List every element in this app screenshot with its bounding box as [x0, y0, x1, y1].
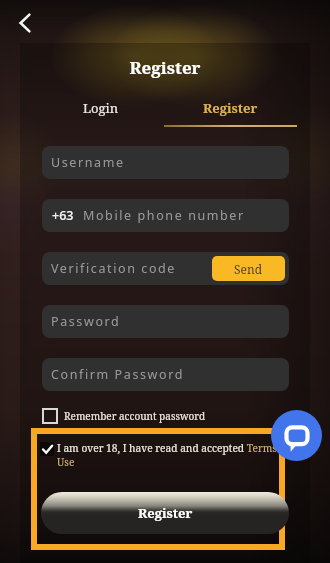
staticText: +63 [52, 207, 74, 224]
staticText: Login [83, 99, 119, 117]
button[interactable]: Username [42, 146, 289, 179]
button[interactable]: Send [212, 256, 285, 281]
button[interactable]: Login [56, 99, 146, 123]
staticText: Mobile phone number [83, 207, 245, 224]
staticText: I am over 18, I have read and accepted T… [57, 441, 277, 455]
staticText: Verification code [51, 260, 177, 277]
button[interactable]: Confirm Password [42, 358, 289, 391]
staticText: Confirm Password [51, 366, 184, 383]
staticText: Register [0, 56, 330, 79]
button[interactable]: Verification code [42, 252, 289, 285]
staticText: Register [203, 99, 258, 117]
button[interactable]: +63 [42, 199, 289, 232]
staticText: Register [138, 504, 193, 522]
staticText: Use [57, 455, 75, 469]
button[interactable]: I am over 18, I have read and accepted T… [40, 441, 289, 469]
button[interactable]: Password [42, 305, 289, 338]
button[interactable]: Register [41, 492, 289, 534]
button[interactable]: Remember account password [42, 407, 206, 425]
staticText: Remember account password [64, 409, 206, 423]
staticText: Password [51, 313, 121, 330]
staticText: Username [51, 154, 125, 171]
button[interactable]: Chat support [271, 410, 322, 461]
button[interactable]: Register [164, 99, 297, 127]
staticText: Send [234, 261, 263, 277]
button[interactable]: Back [8, 6, 42, 40]
